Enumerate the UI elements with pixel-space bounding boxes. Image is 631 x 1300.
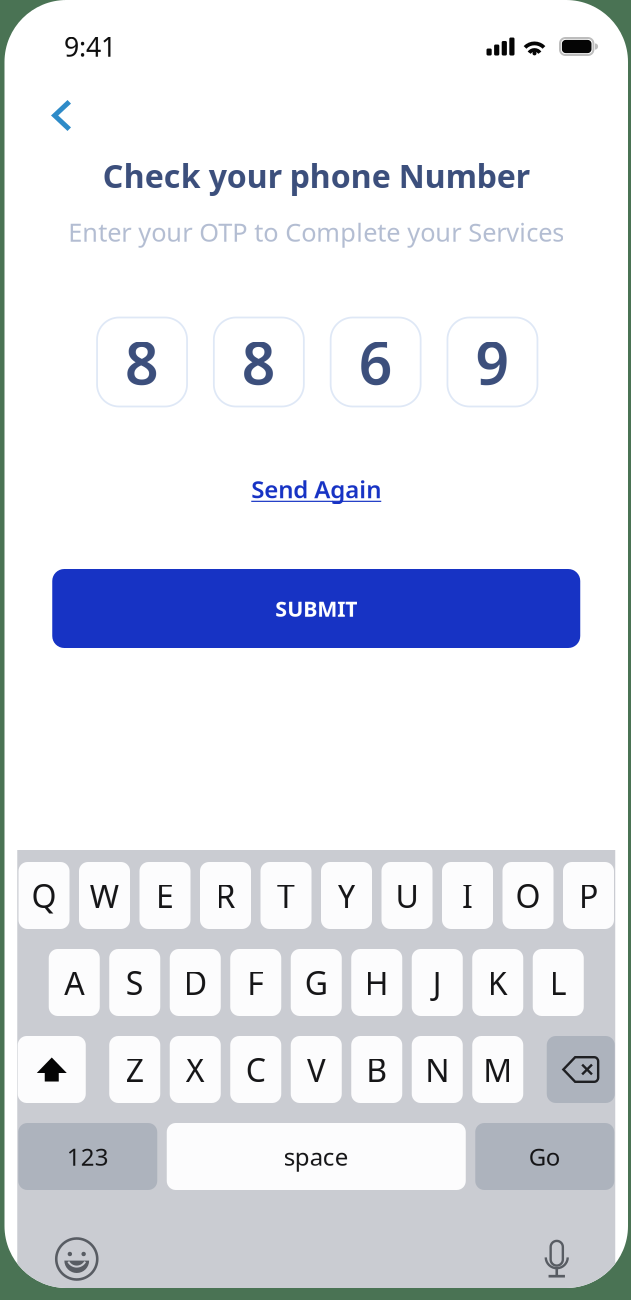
staticText: J bbox=[433, 961, 442, 1004]
staticText: Q bbox=[31, 874, 56, 917]
button[interactable]: U bbox=[381, 862, 432, 929]
button[interactable]: Emoji bbox=[55, 1237, 99, 1281]
staticText: 8 bbox=[242, 323, 276, 401]
staticText: F bbox=[247, 961, 264, 1004]
button[interactable]: G bbox=[291, 949, 342, 1016]
staticText: SUBMIT bbox=[275, 594, 357, 623]
staticText: Send Again bbox=[251, 473, 381, 505]
staticText: H bbox=[365, 961, 389, 1004]
staticText: S bbox=[126, 961, 144, 1004]
staticText: R bbox=[215, 874, 235, 917]
button[interactable]: C bbox=[230, 1036, 281, 1103]
staticText: W bbox=[89, 874, 119, 917]
staticText: M bbox=[483, 1048, 512, 1091]
staticText: V bbox=[307, 1048, 326, 1091]
staticText: Z bbox=[126, 1048, 144, 1091]
button[interactable]: space bbox=[167, 1123, 466, 1190]
staticText: 123 bbox=[67, 1141, 109, 1172]
button[interactable]: F bbox=[230, 949, 281, 1016]
button[interactable]: Y bbox=[321, 862, 372, 929]
staticText: K bbox=[488, 961, 508, 1004]
button[interactable]: N bbox=[412, 1036, 463, 1103]
button[interactable]: O bbox=[502, 862, 553, 929]
button[interactable]: D bbox=[170, 949, 221, 1016]
staticText: B bbox=[366, 1048, 387, 1091]
button[interactable]: Z bbox=[109, 1036, 160, 1103]
staticText: U bbox=[395, 874, 418, 917]
button[interactable]: H bbox=[351, 949, 402, 1016]
button[interactable]: P bbox=[563, 862, 614, 929]
staticText: E bbox=[156, 874, 174, 917]
staticText: space bbox=[284, 1141, 349, 1172]
button[interactable]: Delete bbox=[547, 1036, 615, 1103]
button[interactable]: V bbox=[291, 1036, 342, 1103]
button[interactable]: Back bbox=[34, 88, 88, 142]
staticText: A bbox=[64, 961, 84, 1004]
button[interactable]: Q bbox=[18, 862, 69, 929]
button[interactable]: Go bbox=[475, 1123, 614, 1190]
button[interactable]: S bbox=[109, 949, 160, 1016]
button[interactable]: M bbox=[472, 1036, 523, 1103]
button[interactable]: SUBMIT bbox=[52, 569, 580, 648]
staticText: Y bbox=[337, 874, 355, 917]
staticText: G bbox=[305, 961, 328, 1004]
staticText: I bbox=[462, 874, 473, 917]
button[interactable]: Dictation bbox=[545, 1239, 569, 1279]
staticText: 8 bbox=[125, 323, 159, 401]
button[interactable]: T bbox=[260, 862, 311, 929]
button[interactable]: Send Again bbox=[245, 467, 387, 511]
button[interactable]: A bbox=[49, 949, 100, 1016]
button[interactable]: K bbox=[472, 949, 523, 1016]
button[interactable]: 123 bbox=[18, 1123, 157, 1190]
staticText: 9 bbox=[475, 323, 509, 401]
staticText: 9:41 bbox=[64, 29, 116, 64]
staticText: D bbox=[184, 961, 207, 1004]
staticText: C bbox=[246, 1048, 266, 1091]
button[interactable]: B bbox=[351, 1036, 402, 1103]
staticText: N bbox=[425, 1048, 449, 1091]
button[interactable]: Shift bbox=[18, 1036, 86, 1103]
button[interactable]: R bbox=[200, 862, 251, 929]
staticText: L bbox=[550, 961, 567, 1004]
staticText: X bbox=[186, 1048, 205, 1091]
button[interactable]: J bbox=[412, 949, 463, 1016]
staticText: T bbox=[277, 874, 295, 917]
button[interactable]: X bbox=[170, 1036, 221, 1103]
button[interactable]: L bbox=[533, 949, 584, 1016]
staticText: Check your phone Number bbox=[103, 154, 530, 197]
button[interactable]: E bbox=[139, 862, 190, 929]
button[interactable]: W bbox=[79, 862, 130, 929]
staticText: Go bbox=[529, 1141, 561, 1172]
staticText: O bbox=[515, 874, 540, 917]
button[interactable]: I bbox=[442, 862, 493, 929]
staticText: 6 bbox=[359, 323, 393, 401]
staticText: Enter your OTP to Complete your Services bbox=[68, 215, 564, 249]
staticText: P bbox=[579, 874, 598, 917]
